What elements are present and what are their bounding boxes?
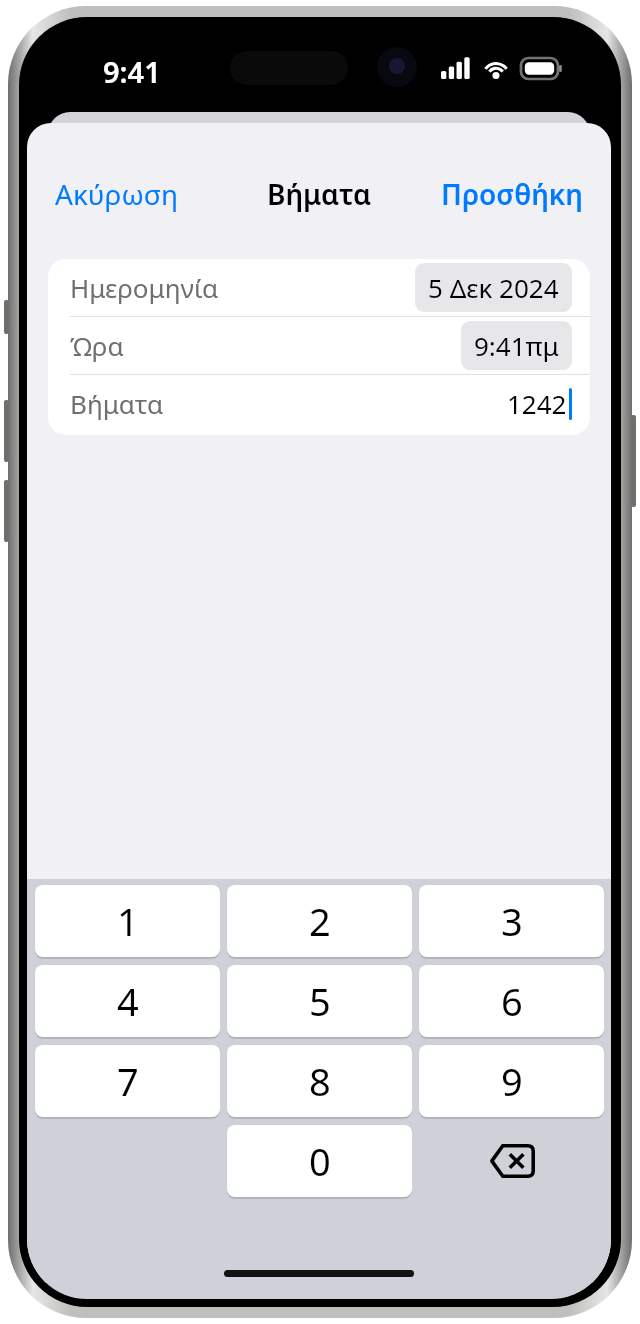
button[interactable]: Ώρα	[48, 317, 590, 374]
staticText: Ακύρωση	[55, 175, 178, 213]
button[interactable]: 3	[419, 885, 604, 957]
staticText: 9:41πμ	[474, 328, 559, 363]
button[interactable]: 4	[35, 965, 220, 1037]
button[interactable]: 5	[227, 965, 412, 1037]
staticText: Βήματα	[70, 386, 164, 421]
staticText: 1242	[507, 386, 567, 421]
button[interactable]: 0	[227, 1125, 412, 1197]
staticText: 0	[309, 1135, 331, 1187]
staticText: 8	[309, 1055, 331, 1107]
staticText: 1	[117, 895, 139, 947]
button[interactable]: Βήματα	[48, 375, 590, 432]
button[interactable]: 7	[35, 1045, 220, 1117]
button[interactable]: 2	[227, 885, 412, 957]
button[interactable]: Προσθήκη	[435, 169, 589, 219]
staticText: 4	[117, 975, 139, 1027]
button[interactable]: Backspace	[419, 1125, 604, 1197]
button[interactable]: 8	[227, 1045, 412, 1117]
button[interactable]: 9	[419, 1045, 604, 1117]
staticText: Ώρα	[70, 328, 124, 363]
staticText: 6	[501, 975, 523, 1027]
staticText: Ημερομηνία	[70, 270, 219, 305]
staticText: 2	[309, 895, 331, 947]
staticText: Προσθήκη	[441, 175, 583, 213]
button[interactable]: Ακύρωση	[49, 169, 184, 219]
button[interactable]: 1	[35, 885, 220, 957]
staticText: 7	[117, 1055, 139, 1107]
staticText: 5	[309, 975, 331, 1027]
button[interactable]: Ημερομηνία	[48, 259, 590, 316]
staticText: 9	[501, 1055, 523, 1107]
staticText: 9:41	[103, 52, 161, 91]
button[interactable]: 6	[419, 965, 604, 1037]
staticText: Βήματα	[267, 175, 372, 213]
staticText: 5 Δεκ 2024	[428, 270, 559, 305]
staticText: 3	[501, 895, 523, 947]
